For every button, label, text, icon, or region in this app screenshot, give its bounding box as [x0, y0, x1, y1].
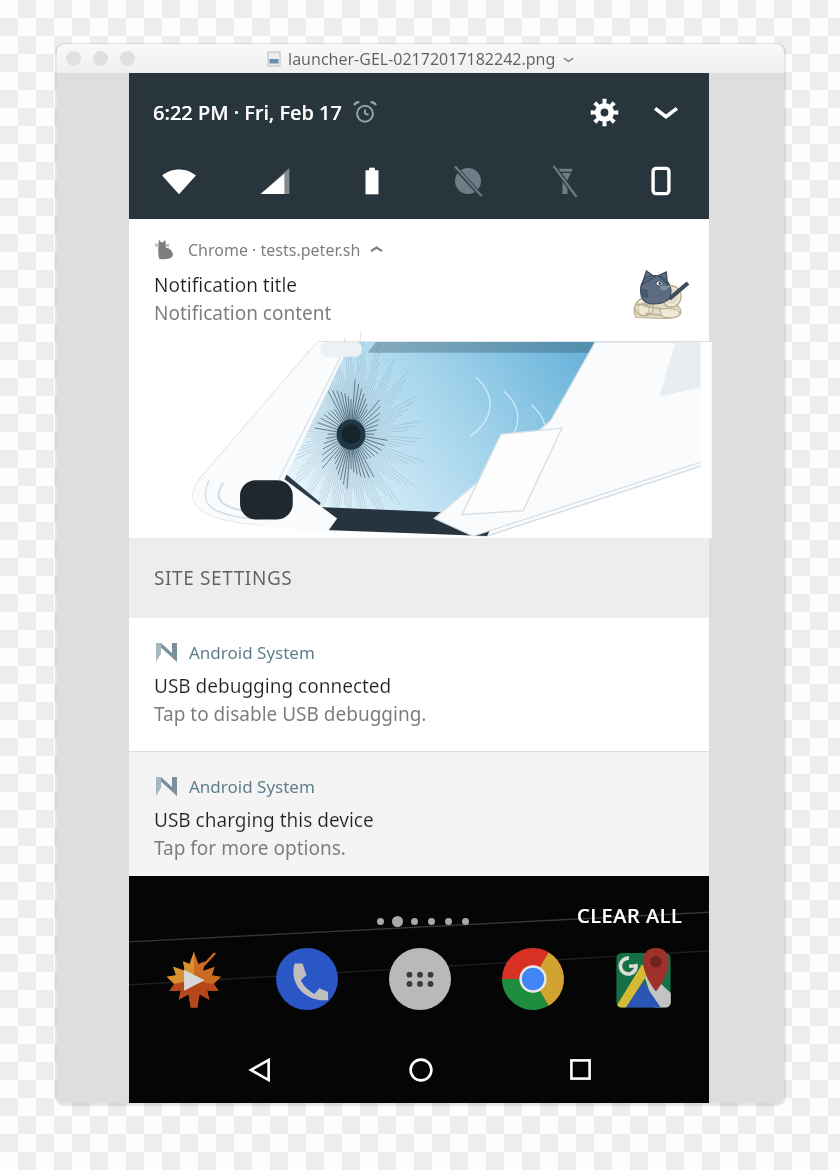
- staticText: Tap to disable USB debugging.: [154, 701, 427, 727]
- button[interactable]: Maps: [613, 946, 679, 1012]
- button[interactable]: SITE SETTINGS: [129, 538, 709, 618]
- staticText: Android System: [189, 641, 315, 664]
- button[interactable]: Recents: [558, 1047, 603, 1092]
- button[interactable]: Window button: [120, 51, 135, 66]
- staticText: Chrome · tests.peter.sh: [188, 239, 361, 261]
- button[interactable]: Android System: [129, 752, 709, 876]
- button[interactable]: Phone: [274, 946, 340, 1012]
- button[interactable]: VLC: [161, 946, 227, 1012]
- button[interactable]: Do not disturb: [448, 161, 488, 201]
- staticText: Notification content: [154, 300, 332, 326]
- staticText: USB debugging connected: [154, 673, 392, 699]
- button[interactable]: CLEAR ALL: [569, 898, 691, 933]
- button[interactable]: Settings: [586, 94, 622, 130]
- staticText: launcher-GEL-02172017182242.png: [288, 48, 556, 70]
- staticText: CLEAR ALL: [577, 902, 683, 929]
- button[interactable]: Expand quick settings: [648, 94, 684, 130]
- staticText: USB charging this device: [154, 807, 374, 833]
- button[interactable]: Back: [237, 1047, 282, 1092]
- button[interactable]: Mobile data: [255, 161, 295, 201]
- button[interactable]: Battery: [352, 161, 392, 201]
- staticText: Tap for more options.: [154, 835, 346, 861]
- button[interactable]: Home: [398, 1047, 443, 1092]
- staticText: 6:22 PM · Fri, Feb 17: [153, 99, 342, 126]
- staticText: Notification title: [154, 272, 298, 298]
- button[interactable]: Wi-Fi: [159, 161, 199, 201]
- button[interactable]: Chrome: [500, 946, 566, 1012]
- button[interactable]: Document menu: [563, 54, 574, 65]
- button[interactable]: All apps: [387, 946, 453, 1012]
- button[interactable]: Window button: [66, 51, 81, 66]
- button[interactable]: Chrome · tests.peter.sh: [129, 219, 709, 538]
- button[interactable]: Window button: [93, 51, 108, 66]
- staticText: Android System: [189, 775, 315, 798]
- button[interactable]: Android System: [129, 618, 709, 751]
- button[interactable]: Flashlight: [545, 161, 585, 201]
- button[interactable]: Auto rotate: [641, 161, 681, 201]
- staticText: SITE SETTINGS: [154, 565, 293, 591]
- button[interactable]: Notification image: [154, 342, 709, 538]
